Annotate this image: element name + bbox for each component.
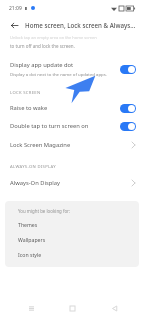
staticText: Unlock tap an empty area on the home scr… xyxy=(10,35,97,40)
staticText: Raise to wake xyxy=(10,104,48,112)
button[interactable]: Themes xyxy=(18,221,129,228)
staticText: Lock Screen Magazine xyxy=(10,141,132,149)
staticText: LOCK SCREEN xyxy=(10,90,41,96)
button[interactable]: Wallpapers xyxy=(18,236,129,243)
staticText: You might be looking for: xyxy=(18,208,71,214)
staticText: 21:09 xyxy=(9,5,22,12)
button[interactable]: Always-On Display xyxy=(0,173,144,192)
button[interactable]: Back xyxy=(7,18,21,32)
staticText: to turn off and lock the screen. xyxy=(10,43,75,49)
button[interactable]: Double tap to turn screen on xyxy=(0,117,144,135)
staticText: Display a dot next to the name of update… xyxy=(10,71,107,77)
staticText: Home screen, Lock screen & Always-O... xyxy=(25,21,136,29)
staticText: Double tap to turn screen on xyxy=(10,122,89,130)
staticText: Always-On Display xyxy=(10,179,132,187)
button[interactable]: Recents xyxy=(20,297,42,319)
button[interactable]: Icon style xyxy=(18,251,129,258)
staticText: Wallpapers xyxy=(18,236,46,243)
button[interactable]: Lock Screen Magazine xyxy=(0,135,144,154)
staticText: Display app update dot xyxy=(10,61,74,69)
button[interactable]: Raise to wake xyxy=(0,99,144,117)
button[interactable]: Back xyxy=(103,297,125,319)
staticText: Themes xyxy=(18,221,38,228)
button[interactable]: Display app update dot xyxy=(0,58,144,80)
button[interactable]: Home xyxy=(61,297,83,319)
staticText: Icon style xyxy=(18,251,42,258)
staticText: ALWAYS-ON DISPLAY xyxy=(10,164,56,170)
